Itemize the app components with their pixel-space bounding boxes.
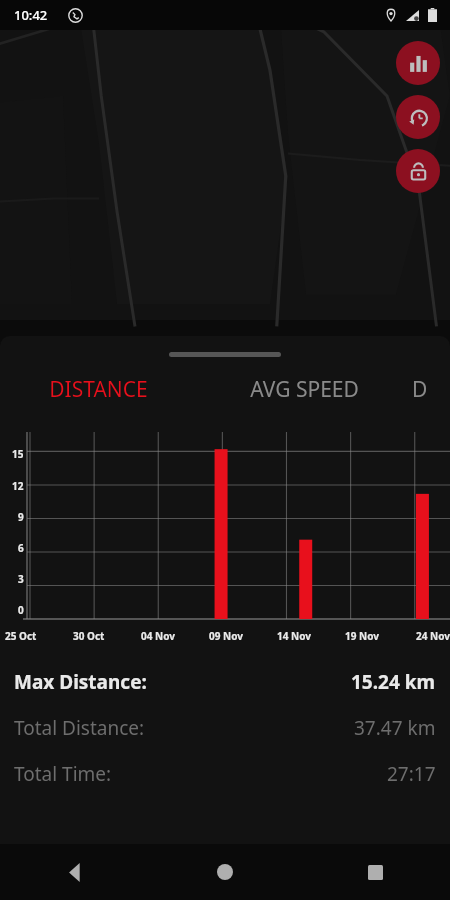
staticText: D [412, 375, 428, 404]
button[interactable]: Home [150, 844, 300, 900]
button[interactable]: D [412, 362, 450, 416]
button[interactable]: Statistics [396, 41, 440, 85]
staticText: 12 [12, 479, 24, 493]
button[interactable]: Max Distance: [0, 659, 450, 705]
staticText: DISTANCE [49, 375, 148, 404]
staticText: 9 [18, 510, 24, 524]
staticText: 09 Nov [209, 629, 243, 643]
staticText: 30 Oct [73, 629, 105, 643]
staticText: Total Time: [14, 761, 112, 787]
staticText: 10:42 [14, 6, 48, 24]
button[interactable]: Lock screen [396, 149, 440, 193]
button[interactable]: Recent apps [300, 844, 450, 900]
button[interactable]: Total Distance: [0, 705, 450, 751]
staticText: 15 [12, 447, 24, 461]
button[interactable]: AVG SPEED [196, 362, 412, 416]
staticText: Max Distance: [14, 669, 147, 695]
button[interactable]: History [396, 95, 440, 139]
staticText: 25 Oct [5, 629, 37, 643]
button[interactable]: DISTANCE [0, 362, 196, 416]
staticText: 37.47 km [354, 715, 436, 741]
staticText: 3 [18, 572, 24, 586]
staticText: AVG SPEED [250, 375, 359, 404]
staticText: 24 Nov [416, 629, 450, 643]
button[interactable]: Back [0, 844, 150, 900]
staticText: Total Distance: [14, 715, 145, 741]
button[interactable]: Total Time: [0, 751, 450, 797]
staticText: 0 [18, 603, 24, 617]
staticText: 15.24 km [351, 669, 436, 695]
staticText: 27:17 [387, 761, 436, 787]
staticText: 19 Nov [345, 629, 379, 643]
staticText: 04 Nov [141, 629, 175, 643]
staticText: 14 Nov [277, 629, 311, 643]
staticText: 6 [18, 541, 24, 555]
